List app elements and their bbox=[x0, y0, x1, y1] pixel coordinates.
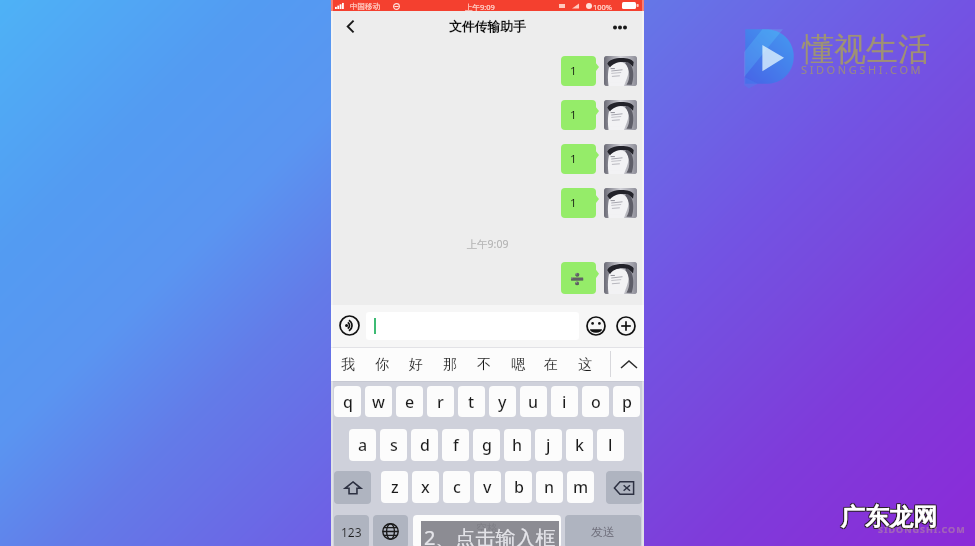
staticText: s bbox=[390, 434, 398, 456]
button[interactable] bbox=[366, 312, 579, 340]
button[interactable]: x bbox=[412, 471, 439, 503]
button[interactable]: i bbox=[551, 386, 578, 417]
staticText: b bbox=[514, 476, 524, 498]
button[interactable]: 在 bbox=[538, 347, 564, 382]
button[interactable]: h bbox=[504, 429, 531, 461]
staticText: 2、点击输入框 bbox=[424, 524, 556, 546]
staticText: SIDONGSHI.COM bbox=[878, 523, 966, 535]
staticText: 空格 bbox=[476, 521, 498, 535]
staticText: h bbox=[512, 434, 523, 456]
staticText: e bbox=[405, 391, 415, 413]
staticText: a bbox=[358, 434, 368, 456]
staticText: g bbox=[482, 434, 492, 456]
staticText: 广东龙网 bbox=[842, 502, 938, 532]
button[interactable]: Delete bbox=[606, 471, 642, 504]
button[interactable]: 我 bbox=[335, 347, 361, 382]
staticText: 1 bbox=[570, 63, 577, 79]
staticText: 广东龙网 bbox=[842, 503, 938, 533]
button[interactable]: g bbox=[473, 429, 500, 461]
staticText: f bbox=[453, 434, 459, 456]
button[interactable]: 空格 bbox=[413, 515, 561, 546]
staticText: 中国移动 bbox=[350, 2, 380, 11]
button[interactable]: Expand candidates bbox=[613, 347, 644, 382]
button[interactable]: a bbox=[349, 429, 376, 461]
button[interactable]: Avatar bbox=[604, 100, 637, 130]
button[interactable]: Voice input bbox=[336, 312, 363, 339]
staticText: 123 bbox=[341, 524, 362, 540]
staticText: 广东龙网 bbox=[840, 501, 936, 531]
staticText: j bbox=[546, 434, 551, 456]
button[interactable]: Emoji bbox=[582, 312, 609, 339]
button[interactable]: r bbox=[427, 386, 454, 417]
button[interactable]: 1 bbox=[561, 56, 596, 86]
button[interactable]: c bbox=[443, 471, 470, 503]
button[interactable]: j bbox=[535, 429, 562, 461]
staticText: 懂视生活 bbox=[802, 29, 930, 69]
button[interactable]: s bbox=[380, 429, 407, 461]
staticText: r bbox=[437, 391, 444, 413]
button[interactable]: 123 bbox=[334, 515, 369, 546]
staticText: 文件传输助手 bbox=[449, 19, 526, 35]
button[interactable]: l bbox=[597, 429, 624, 461]
button[interactable]: m bbox=[567, 471, 594, 503]
button[interactable]: Avatar bbox=[604, 188, 637, 218]
staticText: o bbox=[591, 391, 601, 413]
button[interactable]: d bbox=[411, 429, 438, 461]
staticText: 广东龙网 bbox=[840, 502, 936, 532]
button[interactable]: o bbox=[582, 386, 609, 417]
button[interactable]: y bbox=[489, 386, 516, 417]
button[interactable]: 好 bbox=[403, 347, 429, 382]
button[interactable]: k bbox=[566, 429, 593, 461]
button[interactable]: Add attachment bbox=[612, 312, 639, 339]
staticText: SIDONGSHI.COM bbox=[801, 62, 924, 77]
staticText: v bbox=[483, 476, 492, 498]
staticText: 在 bbox=[544, 356, 558, 374]
button[interactable]: t bbox=[458, 386, 485, 417]
staticText: 好 bbox=[409, 356, 423, 374]
staticText: 那 bbox=[443, 356, 457, 374]
button[interactable]: Shift bbox=[334, 471, 371, 504]
button[interactable]: 这 bbox=[572, 347, 598, 382]
button[interactable]: w bbox=[365, 386, 392, 417]
staticText: 广东龙网 bbox=[841, 501, 937, 531]
button[interactable]: e bbox=[396, 386, 423, 417]
button[interactable]: z bbox=[381, 471, 408, 503]
staticText: i bbox=[562, 391, 567, 413]
staticText: l bbox=[608, 434, 613, 456]
button[interactable]: Avatar bbox=[604, 144, 637, 174]
button[interactable]: More options bbox=[607, 14, 633, 40]
button[interactable]: Back bbox=[337, 13, 363, 39]
button[interactable]: f bbox=[442, 429, 469, 461]
button[interactable]: Avatar bbox=[604, 56, 637, 86]
staticText: ➗ bbox=[570, 272, 585, 285]
staticText: c bbox=[453, 476, 461, 498]
button[interactable]: 嗯 bbox=[505, 347, 531, 382]
staticText: q bbox=[343, 391, 353, 413]
button[interactable]: 发送 bbox=[565, 515, 641, 546]
staticText: 广东龙网 bbox=[841, 503, 937, 533]
button[interactable]: Avatar bbox=[604, 262, 637, 294]
staticText: 不 bbox=[477, 356, 491, 374]
staticText: 你 bbox=[375, 356, 389, 374]
staticText: 广东龙网 bbox=[840, 503, 936, 533]
button[interactable]: Switch language bbox=[373, 515, 408, 546]
staticText: 1 bbox=[570, 195, 577, 211]
staticText: 我 bbox=[341, 356, 355, 374]
button[interactable]: u bbox=[520, 386, 547, 417]
staticText: k bbox=[575, 434, 584, 456]
button[interactable]: 1 bbox=[561, 188, 596, 218]
button[interactable]: 1 bbox=[561, 100, 596, 130]
button[interactable]: 1 bbox=[561, 144, 596, 174]
button[interactable]: p bbox=[613, 386, 640, 417]
button[interactable]: q bbox=[334, 386, 361, 417]
button[interactable]: v bbox=[474, 471, 501, 503]
button[interactable]: 那 bbox=[437, 347, 463, 382]
button[interactable]: 你 bbox=[369, 347, 395, 382]
button[interactable]: ➗ bbox=[561, 262, 596, 294]
button[interactable]: 不 bbox=[471, 347, 497, 382]
staticText: p bbox=[622, 391, 632, 413]
button[interactable]: n bbox=[536, 471, 563, 503]
button[interactable]: b bbox=[505, 471, 532, 503]
staticText: t bbox=[468, 391, 475, 413]
staticText: 上午9:09 bbox=[331, 237, 644, 251]
